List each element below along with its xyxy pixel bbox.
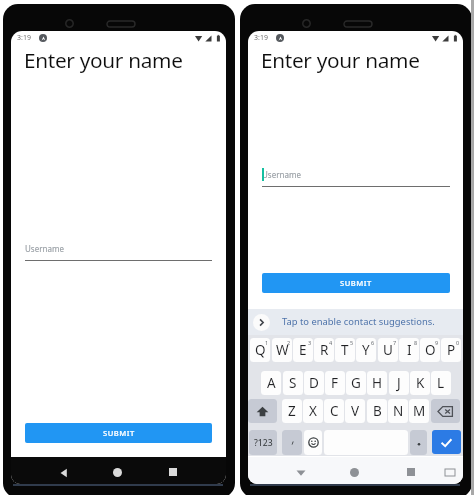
button[interactable]: X [303, 399, 323, 423]
button[interactable]: U [378, 338, 398, 362]
button[interactable]: Comma [282, 430, 302, 455]
staticText: G [351, 374, 361, 392]
button[interactable]: Y [356, 338, 376, 362]
staticText: Enter your name [261, 46, 420, 74]
staticText: 9 [435, 339, 439, 346]
staticText: U [383, 341, 393, 359]
staticText: 0 [456, 339, 460, 346]
staticText: Y [362, 341, 370, 359]
staticText: E [299, 341, 307, 359]
staticText: O [425, 341, 436, 359]
staticText: Enter your name [24, 46, 183, 74]
staticText: SUBMIT [340, 278, 372, 288]
button[interactable]: Hide keyboard [294, 466, 308, 480]
staticText: 3 [308, 339, 312, 346]
button[interactable]: Symbols [249, 430, 277, 455]
button[interactable]: SUBMIT [25, 423, 212, 443]
staticText: K [416, 374, 425, 392]
staticText: I [407, 341, 412, 359]
staticText: 6 [371, 339, 375, 346]
button[interactable]: Backspace [431, 399, 460, 423]
button[interactable]: O [420, 338, 440, 362]
button[interactable]: K [410, 371, 430, 395]
staticText: M [413, 402, 426, 420]
button[interactable]: Q [250, 338, 270, 362]
staticText: Z [288, 402, 296, 420]
button[interactable]: P [441, 338, 461, 362]
button[interactable]: Home [350, 468, 359, 477]
staticText: T [341, 341, 349, 359]
button[interactable]: Back [57, 466, 71, 480]
button[interactable]: J [389, 371, 409, 395]
button[interactable]: A [261, 371, 281, 395]
staticText: Tap to enable contact suggestions. [282, 315, 435, 328]
button[interactable]: I [399, 338, 419, 362]
staticText: R [320, 341, 329, 359]
staticText: N [393, 402, 404, 420]
button[interactable]: S [283, 371, 303, 395]
staticText: W [276, 341, 289, 359]
staticText: 8 [414, 339, 418, 346]
staticText: 5 [350, 339, 354, 346]
staticText: B [373, 402, 382, 420]
staticText: J [397, 374, 401, 392]
staticText: L [437, 374, 445, 392]
button[interactable]: H [367, 371, 387, 395]
staticText: 2 [287, 339, 291, 346]
staticText: P [447, 341, 456, 359]
button[interactable]: N [388, 399, 408, 423]
staticText: D [309, 374, 319, 392]
button[interactable]: L [431, 371, 451, 395]
staticText: ?123 [254, 437, 273, 449]
button[interactable]: V [345, 399, 365, 423]
button[interactable]: SUBMIT [262, 273, 450, 293]
button[interactable]: E [293, 338, 313, 362]
staticText: Username [25, 243, 64, 254]
button[interactable]: F [325, 371, 345, 395]
staticText: V [351, 402, 360, 420]
button[interactable]: T [335, 338, 355, 362]
staticText: 1 [265, 339, 269, 346]
button[interactable]: Emoji [304, 430, 322, 455]
staticText: Q [255, 341, 266, 359]
button[interactable]: Z [282, 399, 302, 423]
staticText: X [309, 402, 317, 420]
staticText: 4 [329, 339, 333, 346]
button[interactable]: D [304, 371, 324, 395]
button[interactable]: Switch keyboard [445, 469, 455, 476]
button[interactable]: C [324, 399, 344, 423]
button[interactable]: W [272, 338, 292, 362]
staticText: A [267, 374, 276, 392]
button[interactable]: M [409, 399, 429, 423]
button[interactable]: G [346, 371, 366, 395]
button[interactable]: Enter [432, 430, 461, 454]
staticText: SUBMIT [103, 428, 135, 438]
button[interactable]: R [314, 338, 334, 362]
staticText: 7 [393, 339, 397, 346]
button[interactable]: Home [113, 468, 122, 477]
button[interactable]: B [367, 399, 387, 423]
staticText: F [331, 374, 339, 392]
staticText: S [289, 374, 297, 392]
button[interactable]: Expand suggestions [253, 314, 270, 331]
staticText: H [372, 374, 383, 392]
button[interactable]: Period [410, 430, 427, 455]
staticText: 3:19 [254, 33, 268, 43]
staticText: Username [262, 169, 301, 180]
staticText: C [330, 402, 339, 420]
button[interactable]: Shift [248, 399, 277, 423]
staticText: 3:19 [17, 33, 31, 43]
